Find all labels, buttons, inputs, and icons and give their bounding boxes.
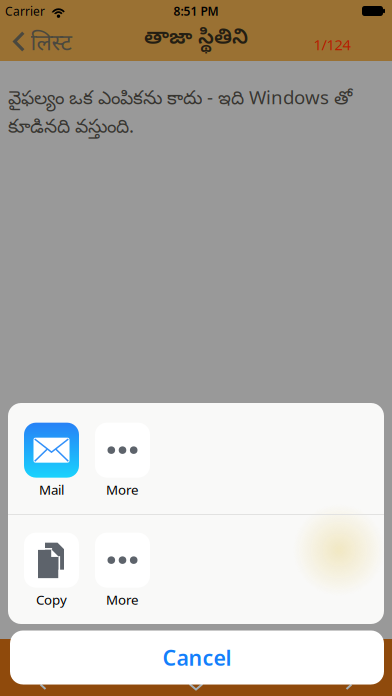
staticText: Mail: [39, 481, 64, 498]
button[interactable]: More: [95, 423, 150, 498]
staticText: Carrier: [5, 3, 45, 19]
staticText: More: [106, 481, 139, 498]
staticText: తాజా స్థితిని: [144, 25, 248, 53]
staticText: 1/124: [313, 35, 350, 54]
button[interactable]: Copy: [24, 533, 79, 608]
button[interactable]: Back: [12, 21, 71, 62]
staticText: Cancel: [162, 643, 231, 672]
staticText: Copy: [36, 591, 67, 608]
staticText: 8:51 PM: [173, 3, 218, 19]
staticText: More: [106, 591, 139, 608]
button[interactable]: Mail: [24, 423, 79, 498]
staticText: लिस्ट: [30, 26, 71, 56]
button[interactable]: Cancel: [10, 630, 384, 684]
button[interactable]: More: [95, 533, 150, 608]
staticText: వైఫల్యం ఒక ఎంపికను కాదు - ఇది Windows తో…: [8, 85, 352, 141]
